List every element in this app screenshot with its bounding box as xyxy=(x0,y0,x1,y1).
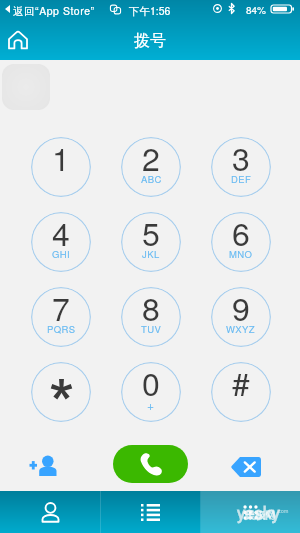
staticText: DEF xyxy=(231,172,252,186)
button[interactable]: 3 xyxy=(211,137,271,197)
staticText: yesky xyxy=(237,499,281,523)
staticText: 2 xyxy=(142,137,160,180)
staticText: 1 xyxy=(52,137,70,180)
button[interactable]: 4 xyxy=(31,212,91,272)
staticText: 5 xyxy=(142,212,160,255)
staticText: MNO xyxy=(229,247,253,261)
button[interactable]: 1 xyxy=(31,137,91,197)
button[interactable]: Call xyxy=(113,445,188,483)
staticText: 7 xyxy=(52,287,70,330)
staticText: 9 xyxy=(232,287,250,330)
staticText: PQRS xyxy=(47,322,76,336)
staticText: 下午1:56 xyxy=(129,3,171,18)
staticText: JKL xyxy=(142,247,160,261)
staticText: 4 xyxy=(52,212,70,255)
button[interactable]: Contacts xyxy=(0,491,100,533)
staticText: 8 xyxy=(142,287,160,330)
button[interactable]: 8 xyxy=(121,287,181,347)
staticText: 拨号 xyxy=(134,31,166,51)
button[interactable]: 0 xyxy=(121,362,181,422)
staticText: 3 xyxy=(232,137,250,180)
staticText: 84% xyxy=(246,3,267,17)
staticText: 天极网 xyxy=(245,509,275,522)
button[interactable] xyxy=(31,362,91,422)
button[interactable]: Call log xyxy=(101,491,200,533)
staticText: WXYZ xyxy=(226,322,256,336)
button[interactable]: Dialer xyxy=(201,491,300,533)
staticText: # xyxy=(232,362,250,405)
button[interactable]: 2 xyxy=(121,137,181,197)
button[interactable]: 6 xyxy=(211,212,271,272)
staticText: .com xyxy=(277,508,289,515)
button[interactable]: 9 xyxy=(211,287,271,347)
staticText: 6 xyxy=(232,212,250,255)
button[interactable]: Home xyxy=(5,27,31,53)
staticText: GHI xyxy=(52,247,71,261)
button[interactable]: 5 xyxy=(121,212,181,272)
staticText: + xyxy=(147,396,155,413)
staticText: ABC xyxy=(141,172,162,186)
button[interactable]: Add contact xyxy=(20,444,64,484)
button[interactable]: 7 xyxy=(31,287,91,347)
staticText: 返回“App Store” xyxy=(13,3,95,18)
staticText: TUV xyxy=(141,322,162,336)
button[interactable]: Backspace xyxy=(222,444,270,484)
button[interactable]: # xyxy=(211,362,271,422)
staticText: 0 xyxy=(142,362,160,405)
